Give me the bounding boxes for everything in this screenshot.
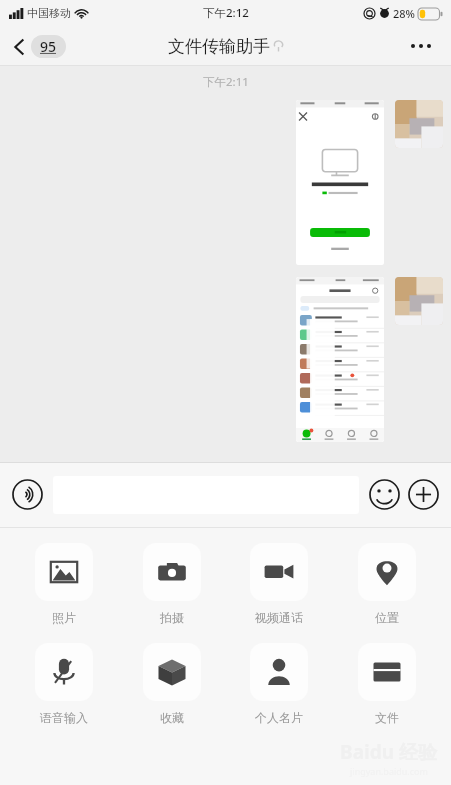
button[interactable]: Back, 95 unread — [10, 32, 70, 61]
staticText: 位置 — [375, 610, 399, 625]
staticText: 下午2:11 — [203, 74, 249, 90]
button[interactable]: Emoji — [369, 479, 400, 510]
button[interactable]: 语音输入 — [20, 641, 108, 727]
button[interactable]: 收藏 — [128, 641, 216, 727]
staticText: Baidu 经验 — [340, 739, 437, 765]
button[interactable]: 拍摄 — [128, 541, 216, 627]
staticText: 拍摄 — [160, 610, 184, 625]
staticText: 照片 — [52, 610, 76, 625]
button[interactable]: 个人名片 — [235, 641, 323, 727]
staticText: 文件传输助手 — [168, 36, 270, 57]
staticText: 语音输入 — [40, 710, 88, 725]
button[interactable]: 照片 — [20, 541, 108, 627]
button[interactable]: Image message — [296, 100, 384, 265]
staticText: 视频通话 — [255, 610, 303, 625]
button[interactable]: 位置 — [343, 541, 431, 627]
button[interactable]: Image message — [296, 277, 384, 442]
staticText: 收藏 — [160, 710, 184, 725]
staticText: 文件 — [375, 710, 399, 725]
staticText: 95 — [40, 37, 57, 56]
staticText: 下午2:12 — [203, 5, 249, 21]
staticText: 个人名片 — [255, 710, 303, 725]
button[interactable]: 文件 — [343, 641, 431, 727]
staticText: 28% — [393, 6, 415, 21]
button[interactable]: 视频通话 — [235, 541, 323, 627]
staticText: 中国移动 — [27, 6, 71, 20]
button[interactable]: More options — [405, 38, 437, 54]
button[interactable]: Voice input — [12, 479, 43, 510]
button[interactable]: More functions — [408, 479, 439, 510]
